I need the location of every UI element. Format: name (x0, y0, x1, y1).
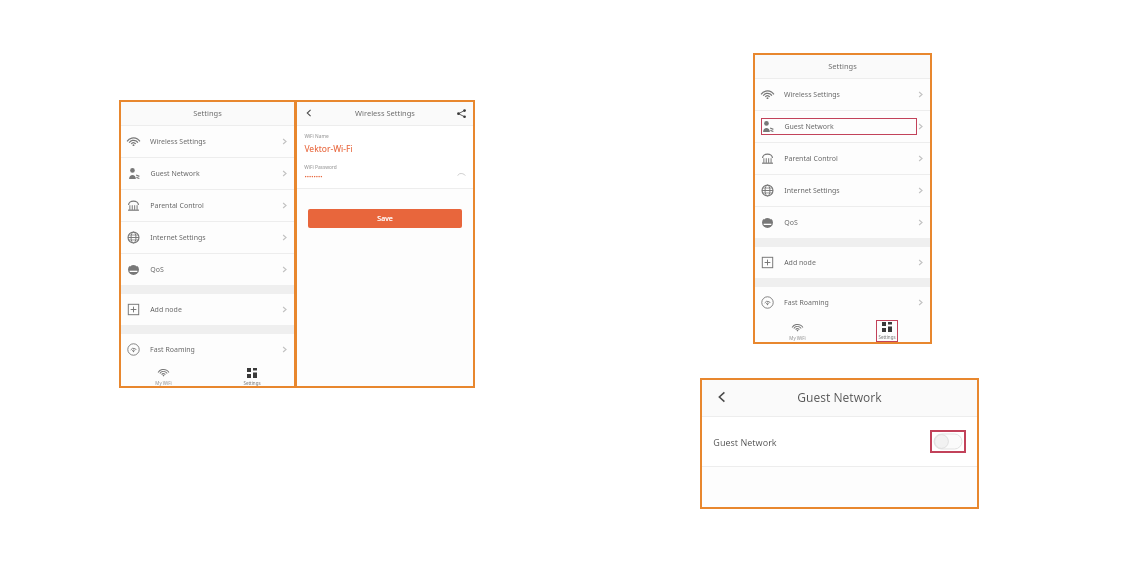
staticText: QoS (784, 218, 798, 228)
button[interactable]: Internet Settings (119, 222, 296, 253)
staticText: Wireless Settings (355, 108, 415, 118)
staticText: Guest Network (784, 122, 834, 132)
button[interactable]: Internet Settings (753, 175, 932, 206)
button[interactable]: Back (712, 387, 732, 407)
staticText: Settings (828, 61, 857, 71)
staticText: Internet Settings (150, 233, 206, 243)
button[interactable]: Settings (207, 365, 296, 388)
button[interactable]: Parental Control (753, 143, 932, 174)
staticText: WiFi Password (304, 164, 337, 171)
button[interactable]: Guest Network (119, 158, 296, 189)
staticText: Vektor-Wi-Fi (304, 143, 353, 155)
button[interactable]: Wireless Settings (753, 79, 932, 110)
staticText: Add node (784, 258, 816, 268)
staticText: Internet Settings (784, 186, 840, 196)
staticText: Settings (243, 380, 261, 386)
staticText: •••••••• (304, 173, 323, 181)
staticText: Guest Network (797, 389, 882, 405)
button[interactable]: Share (454, 106, 468, 120)
staticText: Add node (150, 305, 182, 315)
button[interactable]: Settings (842, 318, 932, 344)
staticText: Guest Network (150, 169, 200, 179)
staticText: Guest Network (713, 436, 777, 448)
button[interactable]: Fast Roaming (753, 287, 932, 318)
button[interactable]: Add node (119, 294, 296, 325)
button[interactable]: Back (302, 106, 316, 120)
staticText: Save (377, 214, 393, 224)
staticText: Fast Roaming (784, 298, 829, 308)
button[interactable]: My WiFi (753, 318, 842, 344)
staticText: My WiFi (789, 335, 806, 341)
button[interactable]: Guest Network (700, 417, 979, 466)
button[interactable]: Show password (457, 172, 466, 181)
button[interactable]: QoS (119, 254, 296, 285)
staticText: Settings (878, 334, 896, 340)
button[interactable]: My WiFi (119, 365, 207, 388)
button[interactable]: Add node (753, 247, 932, 278)
button[interactable]: Guest Network (753, 111, 932, 142)
button[interactable]: Fast Roaming (119, 334, 296, 365)
staticText: Wireless Settings (784, 90, 840, 100)
button[interactable]: Wireless Settings (119, 126, 296, 157)
staticText: Parental Control (784, 154, 838, 164)
staticText: Fast Roaming (150, 345, 195, 355)
button[interactable]: Save (308, 209, 462, 228)
staticText: Settings (193, 108, 222, 118)
staticText: Wireless Settings (150, 137, 206, 147)
staticText: QoS (150, 265, 164, 275)
staticText: My WiFi (155, 380, 172, 386)
button[interactable]: QoS (753, 207, 932, 238)
staticText: WiFi Name (304, 133, 329, 140)
staticText: Parental Control (150, 201, 204, 211)
button[interactable]: Parental Control (119, 190, 296, 221)
